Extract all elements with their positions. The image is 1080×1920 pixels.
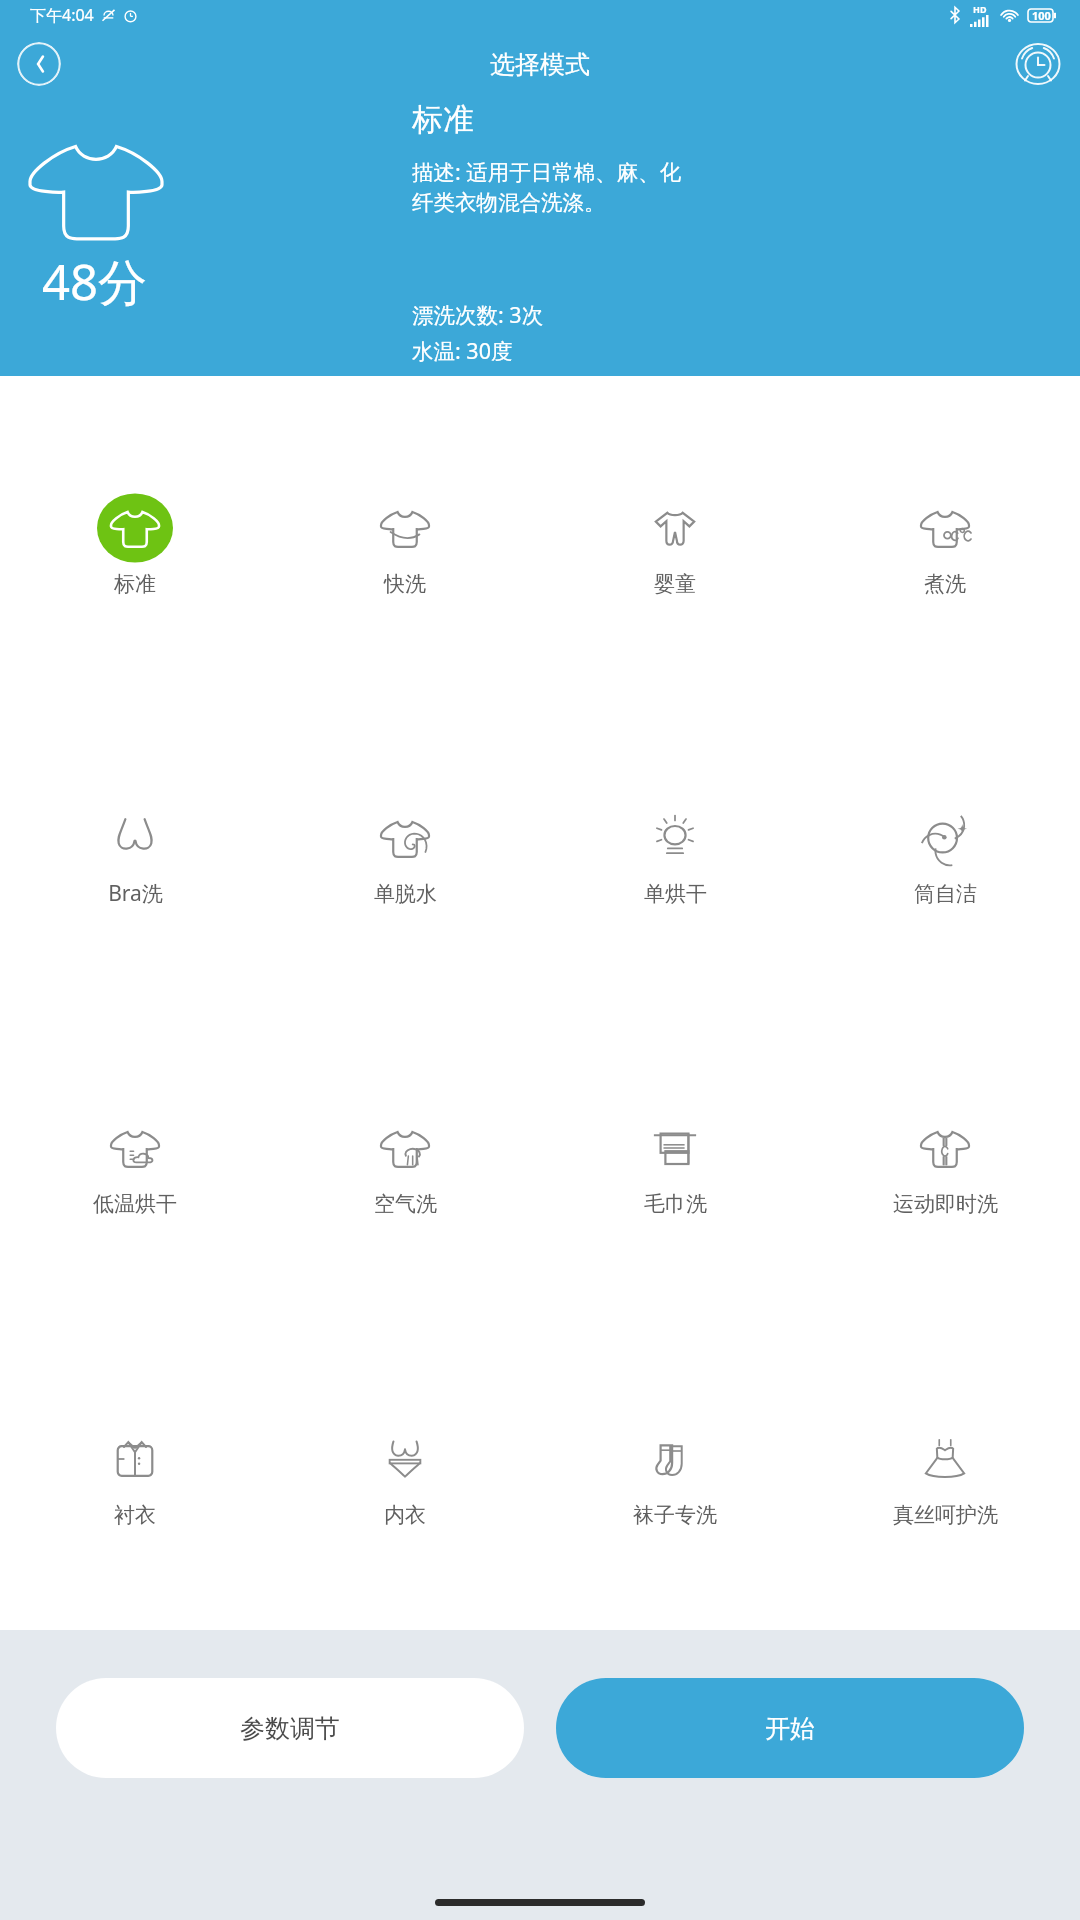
button[interactable]: 快洗 [270,388,540,698]
staticText: 婴童 [654,571,696,597]
button[interactable]: 单脱水 [270,698,540,1008]
staticText: 低温烘干 [93,1191,177,1217]
staticText: 标准 [412,100,474,139]
button[interactable]: 内衣 [270,1319,540,1630]
staticText: 袜子专洗 [633,1502,717,1528]
staticText: 描述: 适用于日常棉、麻、化纤类衣物混合洗涤。 [412,157,702,217]
staticText: 衬衣 [114,1502,156,1528]
staticText: 真丝呵护洗 [893,1502,998,1528]
button[interactable]: 单烘干 [540,698,810,1008]
staticText: Bra洗 [108,879,163,908]
staticText: 水温: 30度 [412,336,513,365]
button[interactable]: 筒自洁 [810,698,1080,1008]
button[interactable]: 袜子专洗 [540,1319,810,1630]
button[interactable]: 运动即时洗 [810,1008,1080,1319]
button[interactable]: Back [17,42,61,86]
staticText: 空气洗 [374,1191,437,1217]
staticText: 单脱水 [374,881,437,907]
staticText: HD [973,3,987,15]
staticText: 运动即时洗 [893,1191,998,1217]
staticText: 48分 [42,248,148,315]
button[interactable]: 参数调节 [56,1678,524,1778]
button[interactable]: 毛巾洗 [540,1008,810,1319]
button[interactable]: 婴童 [540,388,810,698]
staticText: 选择模式 [490,49,590,80]
button[interactable]: 衬衣 [0,1319,270,1630]
button[interactable]: 真丝呵护洗 [810,1319,1080,1630]
staticText: 快洗 [384,571,426,597]
button[interactable]: 开始 [556,1678,1024,1778]
staticText: 毛巾洗 [644,1191,707,1217]
staticText: 煮洗 [924,571,966,597]
staticText: 内衣 [384,1502,426,1528]
button[interactable]: Bra洗 [0,698,270,1008]
button[interactable]: 煮洗 [810,388,1080,698]
button[interactable]: 空气洗 [270,1008,540,1319]
staticText: 开始 [765,1713,815,1744]
button[interactable]: 标准 [0,388,270,698]
staticText: 下午4:04 [30,4,94,26]
staticText: 标准 [114,571,156,597]
button[interactable]: Timer [1013,39,1063,89]
staticText: 单烘干 [644,881,707,907]
button[interactable]: 低温烘干 [0,1008,270,1319]
staticText: 漂洗次数: 3次 [412,300,544,329]
staticText: 参数调节 [240,1713,340,1744]
staticText: 100 [1032,8,1051,23]
staticText: 筒自洁 [914,881,977,907]
